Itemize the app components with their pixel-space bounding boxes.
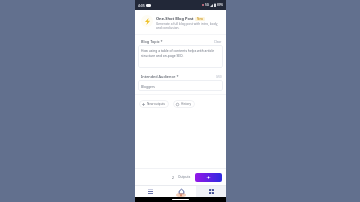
button[interactable]: Library: [135, 186, 166, 197]
button[interactable]: Bloggers: [138, 80, 223, 91]
staticText: One-Shot Blog Post: [156, 16, 194, 21]
staticText: How using a table of contents helps with…: [141, 48, 220, 58]
button[interactable]: History: [173, 100, 195, 108]
staticText: New: [197, 17, 203, 21]
staticText: Clear: [214, 40, 222, 44]
staticText: History: [181, 102, 192, 106]
staticText: New outputs: [147, 102, 166, 106]
staticText: 2: [172, 175, 174, 180]
staticText: 5G: [205, 3, 209, 7]
staticText: Intended Audience *: [141, 74, 179, 79]
staticText: Outputs: [178, 175, 191, 179]
staticText: 0/60: [216, 75, 222, 79]
staticText: Generate a full blog post with intro, bo…: [156, 22, 222, 30]
staticText: Bloggers: [141, 84, 155, 88]
button[interactable]: Apps: [196, 186, 226, 197]
button[interactable]: How using a table of contents helps with…: [138, 45, 223, 68]
staticText: 89%: [217, 3, 223, 7]
staticText: 4:05: [138, 3, 145, 8]
staticText: Blog Topic *: [141, 39, 163, 44]
button[interactable]: New outputs: [139, 100, 169, 108]
button[interactable]: Generate: [195, 173, 222, 182]
button[interactable]: Home: [166, 186, 196, 197]
